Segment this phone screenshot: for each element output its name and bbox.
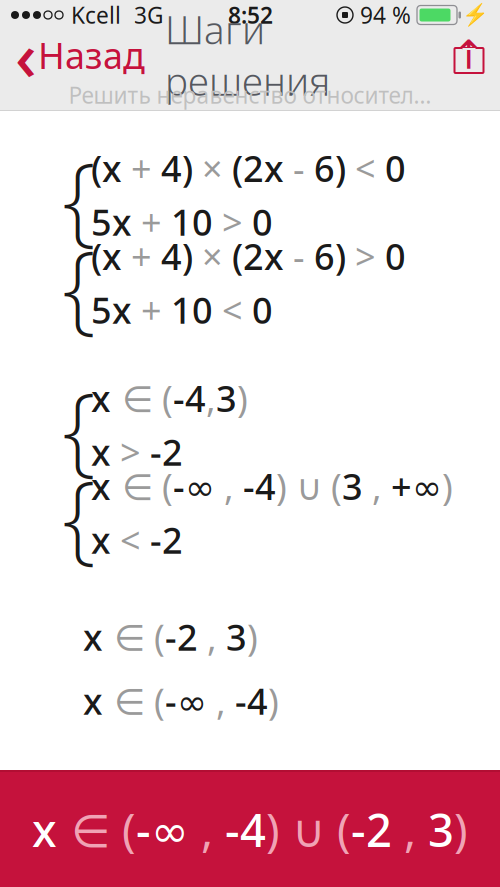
staticText: < <box>346 144 385 192</box>
staticText: ∈ ( <box>111 462 173 510</box>
staticText: 10 <box>171 198 213 246</box>
staticText: ∈ ( <box>103 677 165 725</box>
staticText: Kcell <box>71 0 121 30</box>
staticText: (2x <box>232 232 284 280</box>
staticText: ∈ ( <box>111 374 173 422</box>
staticText: ‹ <box>15 11 37 99</box>
staticText: -∞ <box>173 462 215 510</box>
staticText: 0 <box>385 144 406 192</box>
staticText: ∈ ( <box>57 799 136 860</box>
staticText: ) <box>237 374 248 422</box>
staticText: × <box>193 232 232 280</box>
staticText: + <box>132 286 171 334</box>
staticText: , <box>207 677 235 725</box>
staticText: x <box>91 516 111 564</box>
staticText: - <box>284 144 314 192</box>
staticText: , <box>363 462 391 510</box>
button[interactable]: ‹ <box>0 30 153 80</box>
staticText: 4 <box>161 232 182 280</box>
staticText: ) <box>442 462 453 510</box>
staticText: -4 <box>243 462 276 510</box>
staticText: + <box>132 198 171 246</box>
staticText: -∞ <box>165 677 207 725</box>
staticText: ) ∪ ( <box>276 462 342 510</box>
staticText: , <box>215 462 243 510</box>
staticText: x <box>83 613 103 661</box>
staticText: (x <box>91 232 122 280</box>
staticText: 0 <box>252 286 273 334</box>
staticText: 3 <box>226 613 247 661</box>
staticText: { <box>62 447 96 578</box>
staticText: 3 <box>428 799 454 860</box>
staticText: -2 <box>351 799 392 860</box>
staticText: < <box>111 516 150 564</box>
staticText: 3G <box>134 0 164 30</box>
staticText: , <box>206 374 216 422</box>
staticText: (2x <box>232 144 284 192</box>
staticText: > <box>346 232 385 280</box>
staticText: ) <box>182 232 193 280</box>
staticText: ∈ ( <box>103 613 165 661</box>
staticText: 6) <box>314 232 346 280</box>
staticText: 3 <box>342 462 363 510</box>
staticText: ↑ <box>452 32 486 78</box>
staticText: -4 <box>235 677 268 725</box>
staticText: + <box>122 232 161 280</box>
staticText: × <box>193 144 232 192</box>
staticText: Назад <box>38 31 145 79</box>
staticText: , <box>189 799 225 860</box>
staticText: -4 <box>173 374 206 422</box>
staticText: ) <box>454 799 468 860</box>
staticText: ) ∪ ( <box>266 799 351 860</box>
staticText: 8:52 <box>228 0 273 30</box>
staticText: -∞ <box>136 799 189 860</box>
staticText: 5x <box>91 286 132 334</box>
staticText: { <box>62 359 96 490</box>
staticText: + <box>122 144 161 192</box>
staticText: , <box>198 613 226 661</box>
staticText: , <box>392 799 428 860</box>
staticText: 4 <box>161 144 182 192</box>
staticText: -2 <box>150 428 183 476</box>
staticText: (x <box>91 144 122 192</box>
staticText: > <box>111 428 150 476</box>
staticText: 10 <box>171 286 213 334</box>
staticText: ⚡ <box>462 3 489 27</box>
staticText: 5x <box>91 198 132 246</box>
staticText: > <box>213 198 252 246</box>
staticText: 0 <box>385 232 406 280</box>
staticText: x <box>91 428 111 476</box>
staticText: x <box>91 462 111 510</box>
staticText: -2 <box>165 613 198 661</box>
staticText: 3 <box>216 374 237 422</box>
staticText: ) <box>268 677 279 725</box>
staticText: { <box>62 217 96 348</box>
staticText: +∞ <box>391 462 442 510</box>
staticText: - <box>284 232 314 280</box>
staticText: -4 <box>225 799 266 860</box>
staticText: -2 <box>150 516 183 564</box>
staticText: x <box>83 677 103 725</box>
staticText: x <box>32 799 57 860</box>
staticText: Шаги решения <box>165 4 330 106</box>
staticText: Решить неравенство относител… <box>68 80 431 110</box>
staticText: 6) <box>314 144 346 192</box>
staticText: 0 <box>252 198 273 246</box>
staticText: ) <box>247 613 258 661</box>
staticText: < <box>213 286 252 334</box>
staticText: { <box>62 129 96 260</box>
staticText: x <box>91 374 111 422</box>
staticText: 94 % <box>360 0 411 30</box>
button[interactable]: Share <box>438 30 500 80</box>
staticText: ) <box>182 144 193 192</box>
